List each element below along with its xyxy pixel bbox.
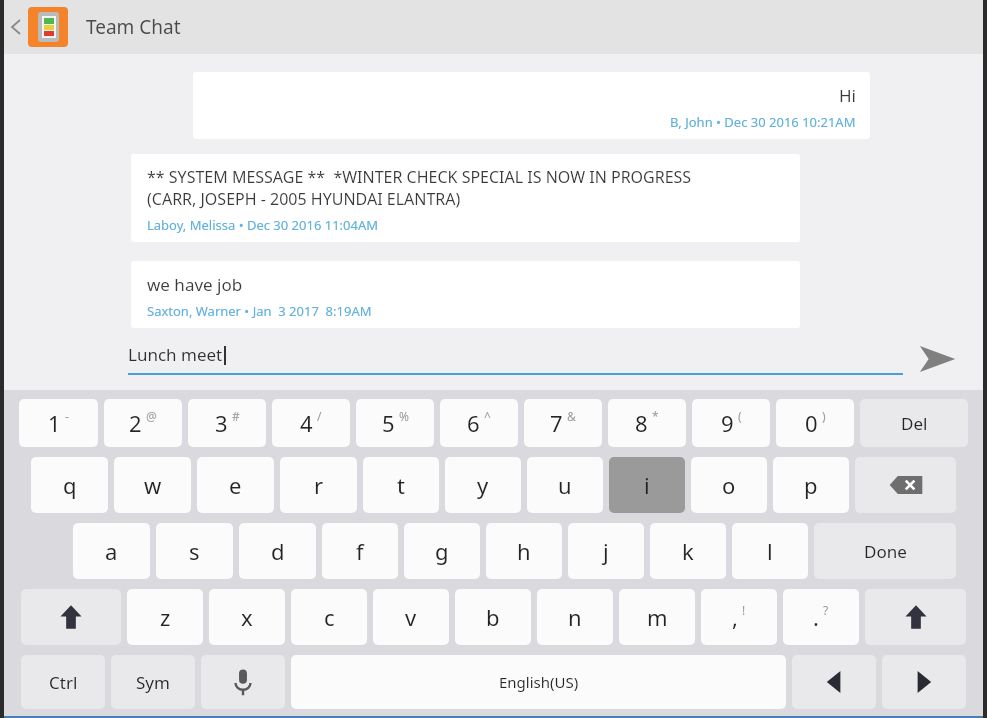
staticText: % (399, 408, 409, 424)
staticText: Del (901, 412, 928, 435)
staticText: a (105, 536, 118, 566)
button[interactable]: 4 (272, 399, 350, 447)
button[interactable]: ** SYSTEM MESSAGE ** *WINTER CHECK SPECI… (131, 154, 800, 242)
button[interactable]: Shift (865, 589, 966, 645)
staticText: d (271, 536, 285, 566)
staticText: / (317, 408, 322, 424)
button[interactable]: 5 (356, 399, 434, 447)
button[interactable]: x (209, 589, 285, 645)
button[interactable]: 3 (188, 399, 266, 447)
staticText: 5 (382, 408, 395, 438)
button[interactable]: Back (4, 0, 983, 54)
button[interactable]: s (156, 523, 233, 579)
staticText: Team Chat (86, 14, 181, 40)
button[interactable]: g (404, 523, 480, 579)
staticText: o (722, 470, 736, 500)
button[interactable]: Cursor left (792, 655, 876, 709)
staticText: h (517, 536, 531, 566)
button[interactable]: 8 (608, 399, 686, 447)
staticText: f (356, 536, 364, 566)
staticText: Hi (839, 84, 856, 107)
button[interactable]: r (280, 457, 357, 513)
staticText: z (160, 602, 171, 632)
staticText: English(US) (499, 672, 579, 692)
button[interactable]: we have job (131, 261, 800, 328)
staticText: w (144, 470, 162, 500)
button[interactable]: m (619, 589, 695, 645)
button[interactable]: Hi (193, 72, 870, 139)
button[interactable]: 1 (19, 399, 98, 447)
staticText: j (603, 536, 609, 566)
staticText: k (682, 536, 694, 566)
staticText: B, John • Dec 30 2016 10:21AM (670, 113, 856, 131)
staticText: y (477, 470, 489, 500)
staticText: 3 (215, 408, 228, 438)
button[interactable]: h (486, 523, 562, 579)
button[interactable]: p (773, 457, 849, 513)
staticText: ( (738, 408, 742, 424)
button[interactable]: Sym (111, 655, 195, 709)
staticText: ) (822, 408, 826, 424)
button[interactable]: Backspace (855, 457, 956, 513)
button[interactable]: Del (860, 399, 968, 447)
button[interactable]: z (127, 589, 203, 645)
staticText: b (486, 602, 500, 632)
other: Back (8, 19, 24, 35)
button[interactable]: n (537, 589, 613, 645)
button[interactable]: k (650, 523, 726, 579)
staticText: . (813, 602, 819, 632)
button[interactable]: Lunch meet (128, 343, 903, 375)
button[interactable]: . (783, 589, 859, 645)
staticText: r (314, 470, 324, 500)
staticText: s (189, 536, 200, 566)
button[interactable]: 9 (692, 399, 770, 447)
staticText: n (568, 602, 582, 632)
button[interactable]: y (445, 457, 521, 513)
button[interactable]: Done (814, 523, 956, 579)
button[interactable]: Shift (21, 589, 121, 645)
button[interactable]: t (363, 457, 439, 513)
staticText: # (232, 408, 240, 424)
button[interactable]: e (197, 457, 274, 513)
button[interactable]: Ctrl (21, 655, 105, 709)
button[interactable]: 7 (524, 399, 602, 447)
staticText: Done (864, 540, 907, 563)
button[interactable]: b (455, 589, 531, 645)
button[interactable]: o (691, 457, 767, 513)
staticText: 4 (300, 408, 313, 438)
staticText: 0 (805, 408, 818, 438)
button[interactable]: , (701, 589, 777, 645)
button[interactable]: Send (903, 328, 971, 390)
button[interactable]: Cursor right (882, 655, 966, 709)
button[interactable]: 6 (440, 399, 518, 447)
button[interactable]: w (114, 457, 191, 513)
button[interactable]: j (568, 523, 644, 579)
staticText: Saxton, Warner • Jan 3 2017 8:19AM (147, 302, 372, 320)
staticText: 9 (721, 408, 734, 438)
staticText: u (558, 470, 572, 500)
staticText: , (732, 602, 738, 632)
staticText: Laboy, Melissa • Dec 30 2016 11:04AM (147, 216, 379, 234)
staticText: 7 (550, 408, 563, 438)
button[interactable]: q (31, 457, 108, 513)
button[interactable]: v (373, 589, 449, 645)
staticText: - (65, 408, 69, 424)
button[interactable]: 0 (776, 399, 854, 447)
button[interactable]: i (609, 457, 685, 513)
button[interactable]: c (291, 589, 367, 645)
staticText: Sym (136, 671, 170, 694)
button[interactable]: l (732, 523, 808, 579)
button[interactable]: Voice input (201, 655, 285, 709)
button[interactable]: d (239, 523, 316, 579)
button[interactable]: u (527, 457, 603, 513)
button[interactable]: a (73, 523, 150, 579)
button[interactable]: English(US) (291, 655, 786, 709)
button[interactable]: 2 (104, 399, 182, 447)
staticText: Ctrl (49, 671, 78, 694)
staticText: * (652, 408, 659, 424)
staticText: g (435, 536, 449, 566)
button[interactable]: f (322, 523, 398, 579)
staticText: i (644, 470, 650, 500)
staticText: ** SYSTEM MESSAGE ** *WINTER CHECK SPECI… (147, 166, 692, 188)
staticText: t (397, 470, 405, 500)
